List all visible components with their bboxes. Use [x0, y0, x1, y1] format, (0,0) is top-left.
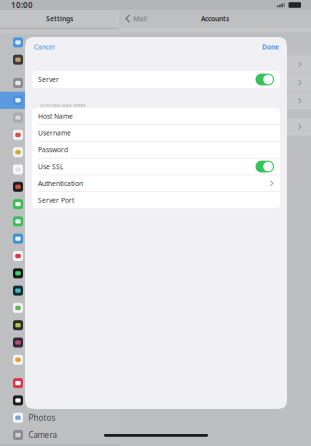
button[interactable]: Settings item: [0, 265, 119, 282]
button[interactable]: Settings item: [0, 299, 119, 317]
staticText: Server: [38, 75, 59, 84]
button[interactable]: Settings item: [0, 334, 119, 351]
button[interactable]: Settings item: [0, 317, 119, 334]
button[interactable]: Settings item: [0, 282, 119, 299]
staticText: Cancel: [34, 43, 55, 51]
button[interactable]: Password: [32, 142, 280, 158]
staticText: Mail: [133, 14, 147, 23]
button[interactable]: Settings item: [0, 178, 119, 195]
button[interactable]: Settings item: [0, 74, 119, 92]
button[interactable]: Settings item: [0, 51, 119, 68]
button[interactable]: Camera: [0, 426, 119, 444]
button[interactable]: Settings item: [0, 351, 119, 368]
staticText: Host Name: [38, 112, 73, 121]
button[interactable]: Host Name: [32, 108, 280, 124]
staticText: Password: [38, 145, 68, 154]
staticText: Settings: [46, 14, 73, 23]
staticText: Authentication: [38, 179, 83, 188]
button[interactable]: Mail: [119, 11, 147, 26]
button[interactable]: Settings item: [0, 195, 119, 213]
button[interactable]: Username: [32, 125, 280, 141]
button[interactable]: Server: [32, 71, 280, 88]
button[interactable]: Done: [262, 39, 287, 55]
button[interactable]: Settings item: [0, 109, 119, 126]
button[interactable]: Use SSL: [32, 158, 280, 175]
button[interactable]: Account setting: [119, 74, 311, 91]
staticText: 10:00: [11, 0, 33, 10]
button[interactable]: Cancel: [25, 39, 55, 55]
button[interactable]: Settings item: [0, 230, 119, 247]
button[interactable]: Settings item: [0, 247, 119, 265]
button[interactable]: Account setting: [119, 55, 311, 73]
button[interactable]: Settings item: [0, 392, 119, 409]
button[interactable]: Settings item: [0, 92, 119, 109]
button[interactable]: Server Port: [32, 192, 280, 208]
button[interactable]: Authentication: [32, 175, 280, 191]
staticText: Done: [262, 43, 279, 51]
staticText: Use SSL: [38, 162, 63, 171]
button[interactable]: Account setting: [119, 92, 311, 110]
button[interactable]: Settings item: [0, 161, 119, 178]
button[interactable]: Settings item: [0, 34, 119, 51]
button[interactable]: Settings item: [0, 126, 119, 143]
button[interactable]: Photos: [0, 409, 119, 426]
staticText: Photos: [28, 412, 55, 423]
staticText: Accounts: [201, 14, 229, 23]
button[interactable]: Settings item: [0, 213, 119, 230]
button[interactable]: Account setting: [119, 118, 311, 136]
button[interactable]: Settings item: [0, 374, 119, 392]
staticText: Camera: [28, 430, 56, 440]
staticText: Server Port: [38, 196, 74, 205]
staticText: OUTGOING MAIL SERVER: [40, 103, 85, 108]
staticText: Username: [38, 128, 71, 137]
button[interactable]: Settings item: [0, 144, 119, 161]
